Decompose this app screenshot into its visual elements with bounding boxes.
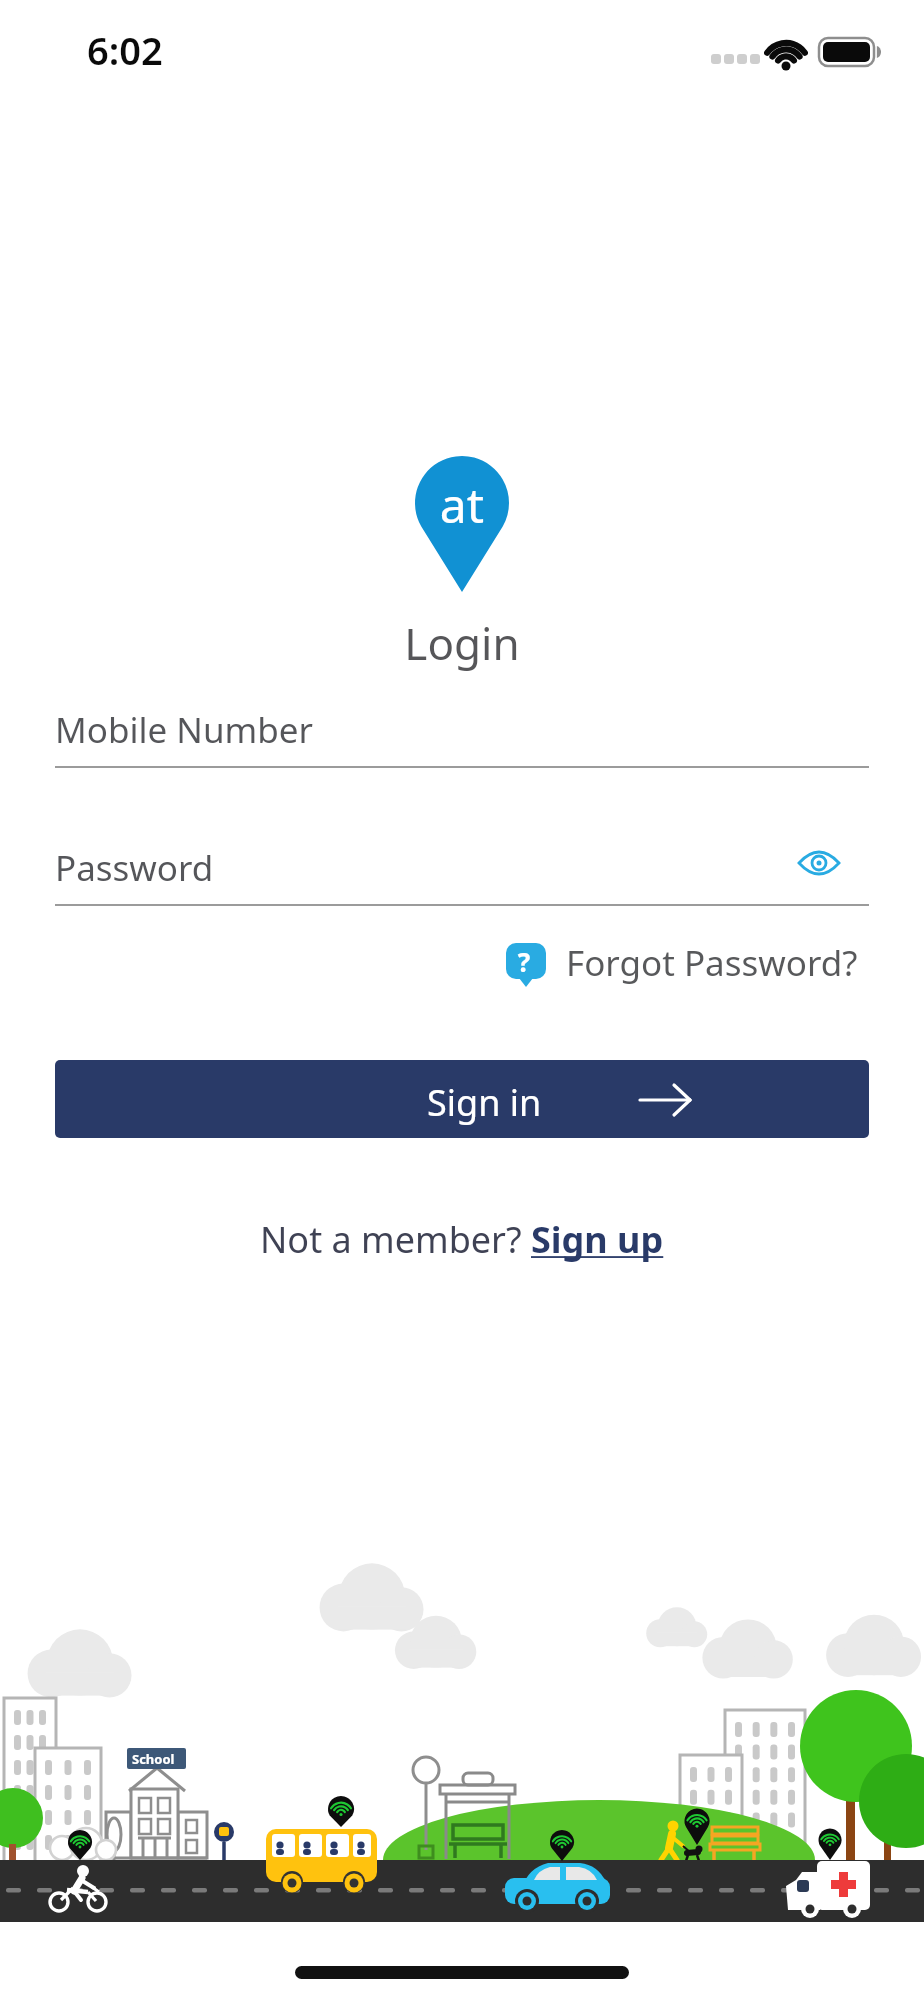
staticText: Not a member? (260, 1215, 531, 1264)
staticText: School (132, 1750, 175, 1768)
button[interactable]: Sign up (531, 1215, 664, 1264)
staticText: Login (0, 613, 924, 673)
button[interactable]: Mobile Number (55, 690, 869, 768)
staticText: at (0, 472, 924, 537)
staticText: Forgot Password? (566, 939, 858, 987)
button[interactable]: Sign in (55, 1060, 869, 1138)
button[interactable] (790, 838, 848, 888)
staticText: Password (55, 844, 214, 892)
button[interactable]: ? (500, 938, 858, 988)
button[interactable]: Password (55, 828, 869, 906)
staticText: Mobile Number (55, 706, 314, 754)
staticText: ? (500, 944, 548, 979)
staticText: 6:02 (87, 24, 163, 76)
staticText: Sign in (427, 1078, 542, 1127)
